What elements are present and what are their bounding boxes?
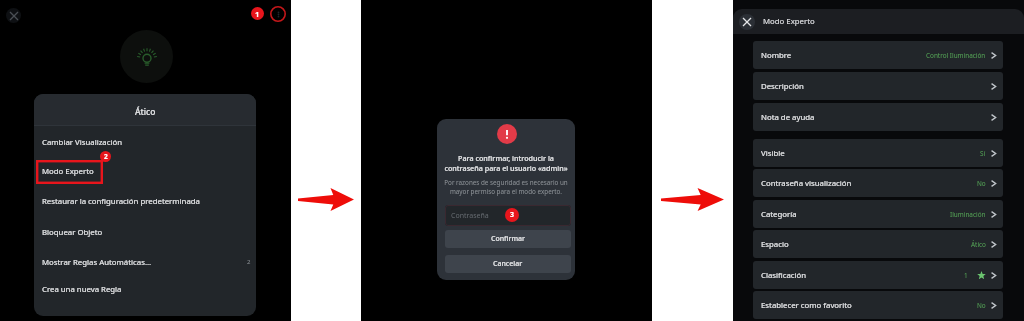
staticText: Modo Experto: [763, 16, 815, 27]
button[interactable]: Modo Experto: [34, 156, 256, 186]
staticText: 2: [104, 152, 108, 161]
button[interactable]: Crea una nueva Regla: [34, 274, 256, 304]
staticText: Iluminación: [950, 210, 986, 219]
button[interactable]: Mostrar Reglas Automáticas...: [34, 247, 256, 277]
staticText: Establecer como favorito: [761, 300, 852, 311]
staticText: Espacio: [761, 239, 789, 250]
staticText: Crea una nueva Regla: [42, 284, 122, 295]
staticText: Cancelar: [493, 259, 523, 269]
button[interactable]: Restaurar la configuración predeterminad…: [34, 186, 256, 216]
staticText: Visible: [761, 148, 785, 159]
staticText: 3: [510, 210, 515, 220]
staticText: Cambiar Visualización: [42, 137, 122, 148]
staticText: Mostrar Reglas Automáticas...: [42, 257, 152, 268]
button[interactable]: Contraseña visualización: [753, 169, 1003, 197]
staticText: Confirmar: [491, 234, 526, 244]
button[interactable]: Establecer como favorito: [753, 291, 1003, 319]
staticText: Restaurar la configuración predeterminad…: [42, 196, 200, 207]
staticText: Para confirmar, introducir la contraseña…: [444, 153, 568, 173]
button[interactable]: Descripción: [753, 72, 1003, 100]
button[interactable]: More options: [270, 6, 286, 22]
staticText: Ático: [135, 106, 156, 118]
button[interactable]: Nota de ayuda: [753, 103, 1003, 131]
button[interactable]: Close: [6, 8, 21, 23]
button[interactable]: Confirmar: [445, 230, 571, 248]
staticText: Nota de ayuda: [761, 112, 815, 123]
button[interactable]: Contraseña: [445, 205, 571, 226]
button[interactable]: Close: [739, 14, 755, 30]
staticText: Contraseña visualización: [761, 178, 852, 189]
staticText: 2: [247, 258, 251, 266]
staticText: Contraseña: [451, 211, 489, 221]
staticText: Sí: [980, 149, 986, 158]
staticText: No: [977, 179, 986, 188]
staticText: Modo Experto: [42, 166, 94, 177]
staticText: Descripción: [761, 81, 804, 92]
staticText: Ático: [971, 240, 986, 249]
staticText: Control Iluminación: [926, 51, 986, 60]
staticText: Por razones de seguridad es necesario un…: [444, 178, 568, 196]
staticText: 1: [964, 271, 968, 280]
button[interactable]: Bloquear Objeto: [34, 217, 256, 247]
staticText: Bloquear Objeto: [42, 227, 103, 238]
staticText: Categoría: [761, 209, 797, 220]
staticText: Nombre: [761, 50, 792, 61]
button[interactable]: Categoría: [753, 200, 1003, 228]
staticText: Clasificación: [761, 270, 807, 281]
button[interactable]: Cancelar: [445, 255, 571, 273]
staticText: No: [977, 301, 986, 310]
staticText: 1: [255, 9, 260, 19]
button[interactable]: Clasificación: [753, 261, 1003, 289]
button[interactable]: Visible: [753, 139, 1003, 167]
button[interactable]: Espacio: [753, 230, 1003, 258]
button[interactable]: Cambiar Visualización: [34, 127, 256, 157]
button[interactable]: Nombre: [753, 41, 1003, 69]
